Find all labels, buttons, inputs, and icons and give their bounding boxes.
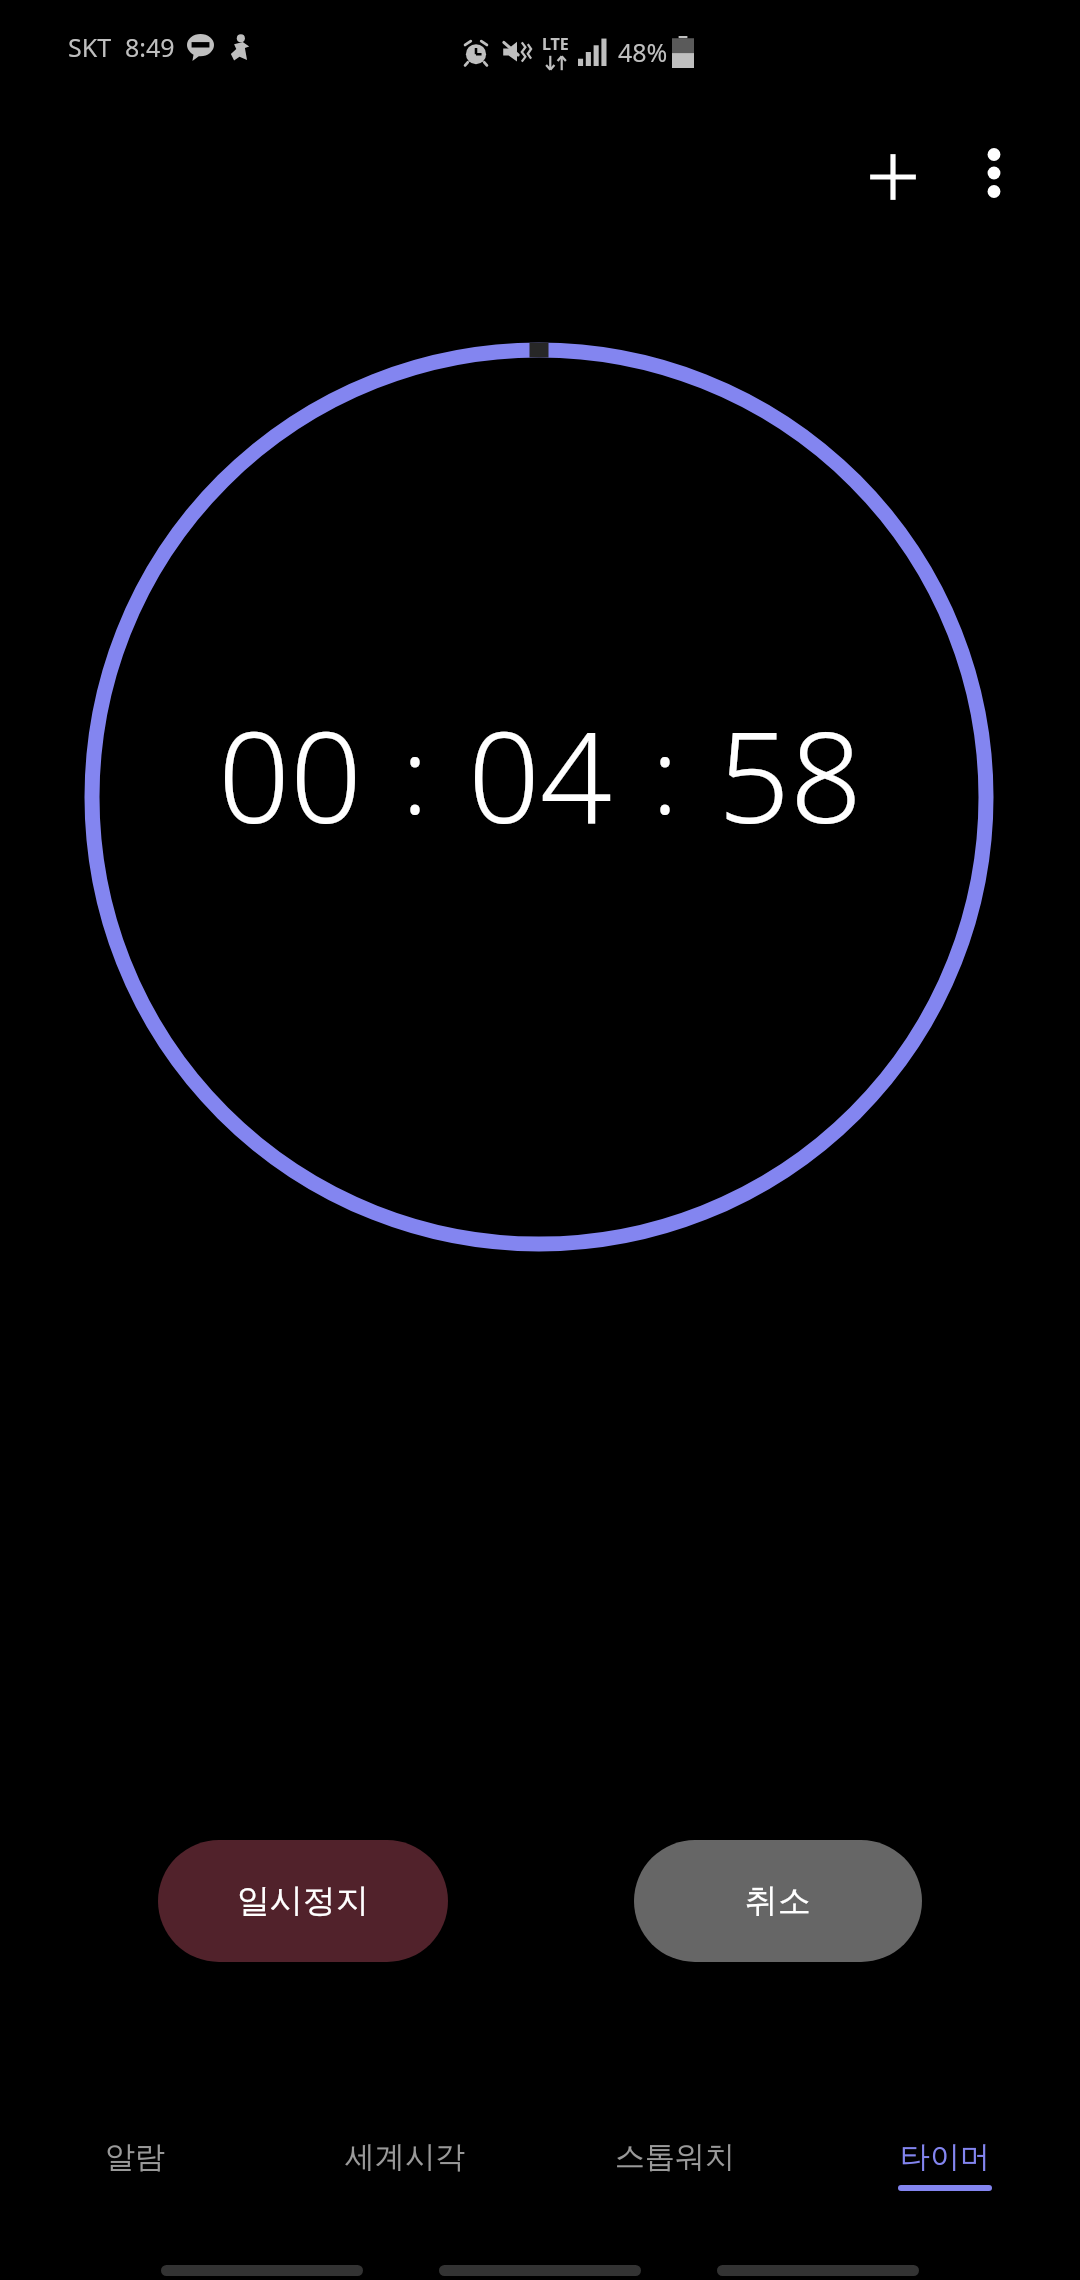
button[interactable]: 취소 (634, 1840, 922, 1962)
staticText: : (402, 703, 428, 845)
button[interactable]: More options (938, 117, 1050, 229)
button[interactable]: 타이머 (810, 2112, 1080, 2222)
staticText: 00 (218, 688, 362, 860)
staticText: 타이머 (900, 2138, 990, 2176)
staticText: 04 (468, 688, 612, 860)
staticText: 취소 (745, 1880, 811, 1922)
staticText: 알람 (105, 2138, 165, 2176)
button[interactable]: 알람 (0, 2112, 270, 2222)
staticText: 58 (718, 688, 862, 860)
staticText: 일시정지 (237, 1880, 369, 1922)
staticText: SKT (68, 30, 112, 64)
staticText: : (652, 703, 678, 845)
button[interactable]: Add timer (833, 117, 953, 237)
button[interactable]: 일시정지 (158, 1840, 448, 1962)
staticText: LTE (542, 33, 569, 55)
button[interactable]: 세계시각 (270, 2112, 540, 2222)
staticText: 스톱워치 (615, 2138, 735, 2176)
staticText: 세계시각 (345, 2138, 465, 2176)
staticText: 8:49 (125, 30, 175, 64)
button[interactable]: 스톱워치 (540, 2112, 810, 2222)
staticText: 48% (618, 35, 668, 69)
